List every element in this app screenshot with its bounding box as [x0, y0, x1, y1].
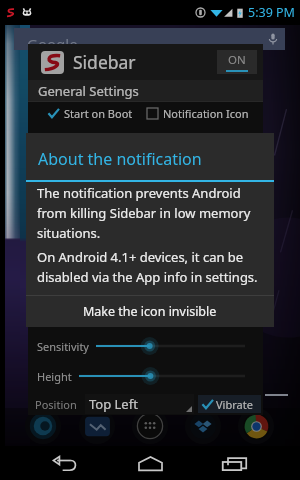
- staticText: ON: [228, 52, 246, 68]
- staticText: About the notification: [38, 148, 202, 170]
- button[interactable]: Skype: [28, 411, 58, 441]
- staticText: Height: [37, 369, 72, 384]
- button[interactable]: Dropbox: [188, 411, 218, 441]
- button[interactable]: Checked: [198, 395, 261, 413]
- button[interactable]: Position Top Left: [85, 394, 194, 414]
- staticText: Top Left: [89, 395, 138, 413]
- staticText: General Settings: [38, 82, 139, 100]
- button[interactable]: Checked: [202, 399, 213, 410]
- button[interactable]: Google search: [14, 28, 285, 50]
- staticText: Make the icon invisible: [83, 303, 217, 320]
- button[interactable]: Height: [79, 367, 245, 385]
- button[interactable]: Chrome: [241, 411, 271, 441]
- button[interactable]: Home: [131, 446, 169, 480]
- button[interactable]: Checked: [48, 108, 59, 119]
- staticText: Vibrate: [216, 397, 253, 412]
- button[interactable]: Recents: [215, 446, 253, 480]
- button[interactable]: Toggle on: [217, 50, 257, 74]
- button[interactable]: Make the icon invisible: [26, 296, 274, 327]
- staticText: Start on Boot: [64, 106, 133, 121]
- button[interactable]: Sensitivity: [96, 337, 245, 355]
- staticText: Notification Icon: [163, 106, 249, 121]
- staticText: Position: [35, 397, 77, 412]
- button[interactable]: Messenger: [82, 411, 112, 441]
- staticText: 5:39 PM: [248, 4, 295, 21]
- staticText: Sidebar: [73, 50, 136, 74]
- button[interactable]: Back: [44, 446, 84, 480]
- staticText: Google: [27, 34, 78, 54]
- staticText: The notification prevents Android from k…: [37, 184, 268, 242]
- button[interactable]: Apps: [135, 411, 165, 441]
- button[interactable]: Unchecked: [147, 108, 158, 119]
- staticText: On Android 4.1+ devices, it can be disab…: [37, 248, 268, 286]
- staticText: Sensitivity: [37, 339, 89, 354]
